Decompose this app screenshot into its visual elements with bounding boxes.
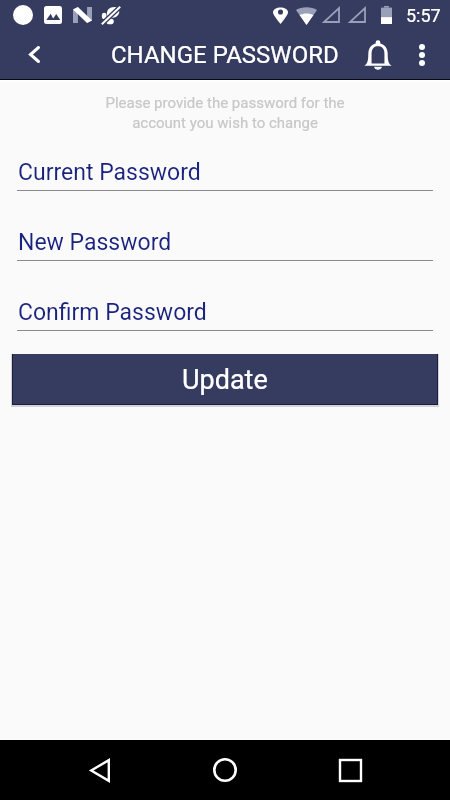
button[interactable]: Navigate up	[13, 33, 56, 76]
button[interactable]: Home	[200, 745, 250, 795]
button[interactable]: Recent apps	[325, 745, 375, 795]
staticText: Confirm Password	[18, 299, 207, 326]
button[interactable]: More options	[402, 35, 442, 75]
button[interactable]: Notifications	[355, 32, 401, 78]
button[interactable]: Back	[75, 745, 125, 795]
button[interactable]: Update	[13, 354, 437, 404]
staticText: CHANGE PASSWORD	[111, 41, 339, 69]
button[interactable]: Confirm Password	[17, 288, 433, 331]
button[interactable]: Current Password	[17, 148, 433, 191]
button[interactable]: New Password	[17, 218, 433, 261]
staticText: Current Password	[18, 159, 201, 186]
staticText: Update	[182, 364, 268, 396]
staticText: Please provide the password for the acco…	[0, 94, 450, 131]
staticText: 5:57	[406, 5, 441, 26]
staticText: New Password	[18, 229, 172, 256]
